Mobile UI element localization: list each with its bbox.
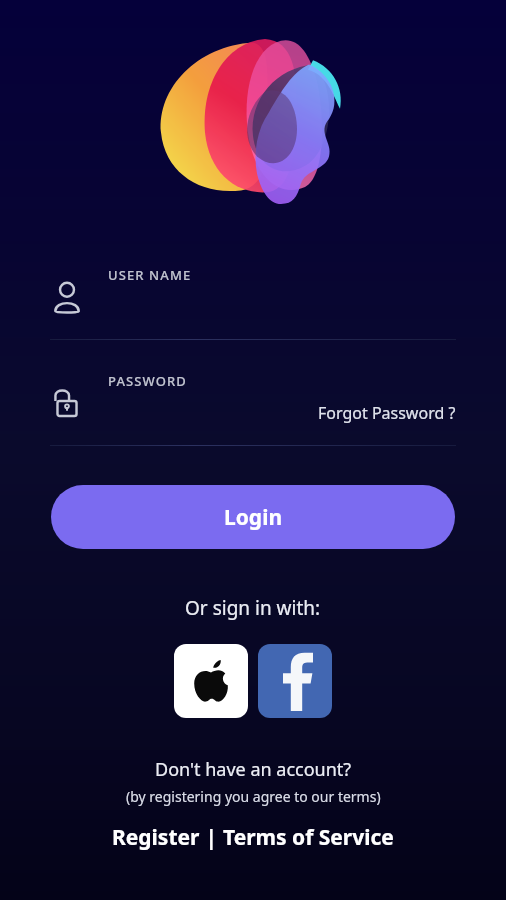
staticText: Login — [224, 503, 283, 532]
button[interactable]: PASSWORD — [50, 360, 456, 446]
staticText: USER NAME — [108, 266, 192, 284]
button[interactable]: Terms of Service — [223, 823, 394, 852]
button[interactable]: Sign in with Facebook — [258, 644, 332, 718]
other: Brain logo — [153, 34, 353, 204]
staticText: Don't have an account? — [155, 757, 352, 782]
staticText: PASSWORD — [108, 372, 187, 390]
staticText: Or sign in with: — [185, 595, 321, 621]
staticText: Terms of Service — [223, 823, 394, 852]
staticText: (by registering you agree to our terms) — [126, 787, 381, 806]
button[interactable]: USER NAME — [50, 254, 456, 340]
staticText: Forgot Password ? — [318, 402, 456, 424]
button[interactable]: Login — [51, 485, 455, 549]
button[interactable]: Register — [112, 823, 200, 852]
staticText: Register — [112, 823, 200, 852]
button[interactable]: Sign in with Apple — [174, 644, 248, 718]
staticText: | — [200, 823, 223, 852]
